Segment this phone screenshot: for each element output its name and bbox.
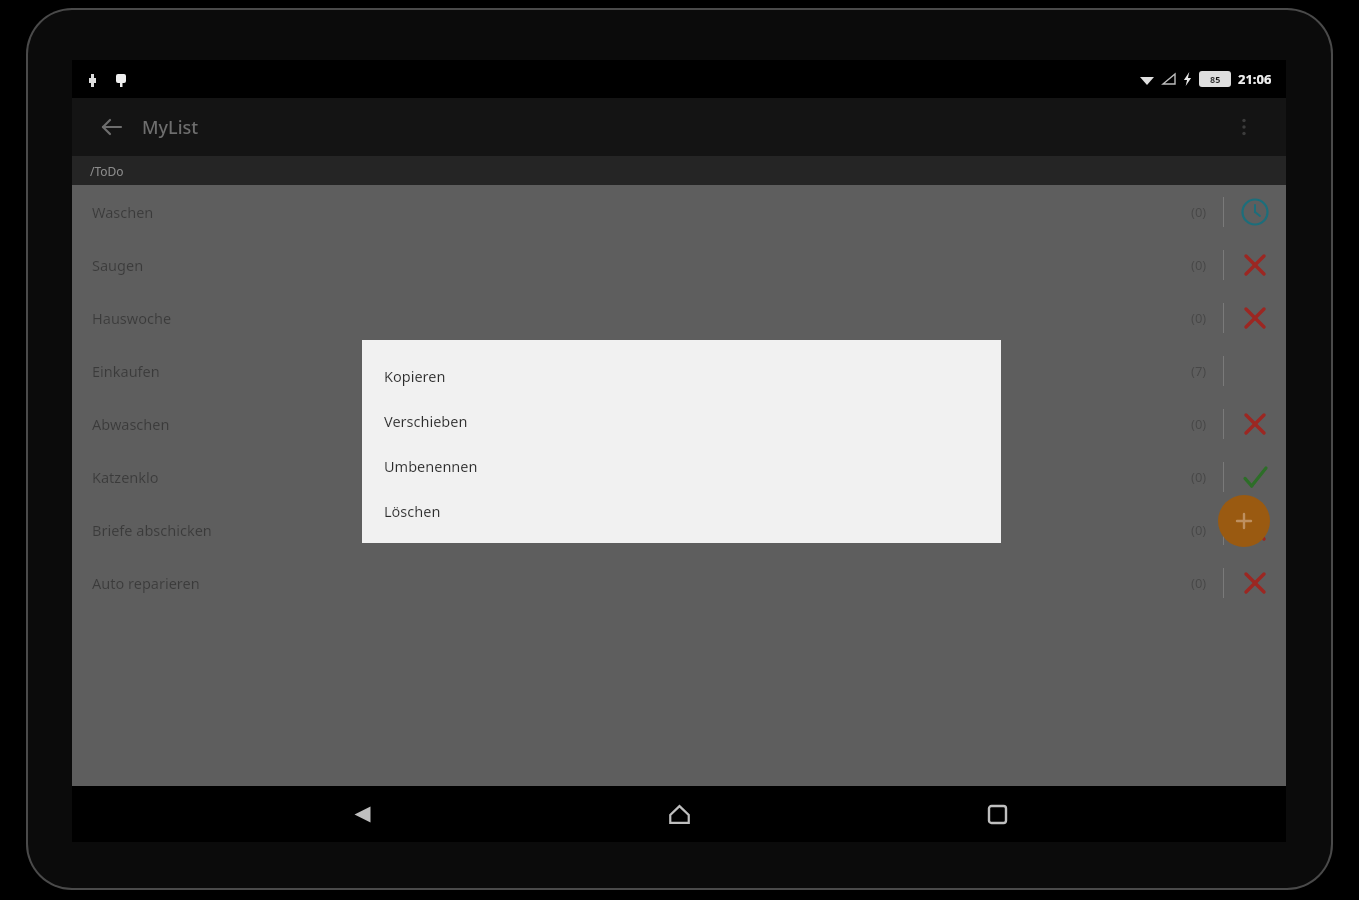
staticText: (0) <box>1191 468 1207 486</box>
button[interactable]: Kopieren <box>362 353 1001 398</box>
button[interactable]: Back <box>92 107 132 147</box>
button[interactable]: Umbenennen <box>362 443 1001 488</box>
button[interactable]: Briefe abschicken <box>72 503 1286 556</box>
staticText: (0) <box>1191 256 1207 274</box>
staticText: Auto reparieren <box>92 573 200 593</box>
staticText: Waschen <box>92 202 154 222</box>
staticText: (0) <box>1191 415 1207 433</box>
staticText: Löschen <box>384 501 441 521</box>
staticText: Hauswoche <box>92 308 172 328</box>
staticText: Saugen <box>92 255 144 275</box>
button[interactable]: Abwaschen <box>72 397 1286 450</box>
staticText: (0) <box>1191 521 1207 539</box>
staticText: Briefe abschicken <box>92 520 212 540</box>
staticText: (0) <box>1191 574 1207 592</box>
button[interactable]: Back <box>334 786 390 842</box>
button[interactable]: More options <box>1224 107 1264 147</box>
staticText: Kopieren <box>384 366 446 386</box>
staticText: Einkaufen <box>92 361 160 381</box>
staticText: /ToDo <box>90 163 124 179</box>
staticText: 85 <box>1210 73 1221 85</box>
button[interactable]: Add item <box>1218 495 1270 547</box>
button[interactable]: Verschieben <box>362 398 1001 443</box>
staticText: (0) <box>1191 309 1207 327</box>
button[interactable]: Katzenklo <box>72 450 1286 503</box>
staticText: Abwaschen <box>92 414 170 434</box>
staticText: Umbenennen <box>384 456 478 476</box>
staticText: Katzenklo <box>92 467 159 487</box>
staticText: MyList <box>142 115 199 140</box>
staticText: (0) <box>1191 203 1207 221</box>
button[interactable]: Einkaufen <box>72 344 1286 397</box>
button[interactable]: Löschen <box>362 488 1001 533</box>
button[interactable]: Home <box>651 786 707 842</box>
button[interactable]: Saugen <box>72 238 1286 291</box>
button[interactable]: Hauswoche <box>72 291 1286 344</box>
staticText: Verschieben <box>384 411 468 431</box>
staticText: (7) <box>1191 362 1207 380</box>
button[interactable]: Recent apps <box>969 786 1025 842</box>
staticText: 21:06 <box>1238 70 1272 88</box>
button[interactable]: Waschen <box>72 185 1286 238</box>
button[interactable]: Auto reparieren <box>72 556 1286 609</box>
